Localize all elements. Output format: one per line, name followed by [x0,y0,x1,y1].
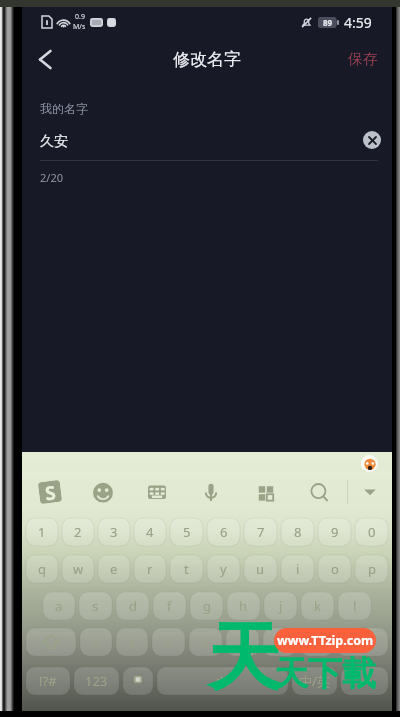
staticText: z [93,633,100,651]
button[interactable]: a [43,592,75,620]
staticText: o [331,560,339,578]
button[interactable]: l [338,592,371,620]
button[interactable]: Sogou [34,476,66,508]
button[interactable]: 2 [62,518,94,546]
staticText: y [220,560,227,578]
staticText: m [310,633,323,651]
staticText: b [239,633,247,651]
button[interactable]: d [116,592,149,620]
button[interactable]: Clear [363,131,381,149]
button[interactable]: 5 [170,518,203,546]
button[interactable]: Voice input [195,476,227,508]
staticText: 89 [323,17,333,28]
staticText: c [165,633,172,651]
staticText: 久安 [40,133,68,151]
button[interactable]: e [98,555,130,583]
staticText: 4 [146,523,154,541]
staticText: g [203,597,211,615]
button[interactable]: Keyboard [141,476,173,508]
staticText: j [279,597,283,615]
button[interactable]: 4 [134,518,166,546]
button[interactable]: o [318,555,351,583]
staticText: n [275,633,284,651]
button[interactable]: n [263,628,296,656]
staticText: t [184,560,189,578]
staticText: 3 [110,523,118,541]
button[interactable]: 7 [244,518,277,546]
button[interactable]: y [207,555,240,583]
staticText: 中/英 [299,672,330,690]
button[interactable]: Backspace [337,628,388,656]
button[interactable]: j [264,592,297,620]
button[interactable]: r [134,555,166,583]
button[interactable]: c [152,628,185,656]
button[interactable]: 9 [318,518,351,546]
button[interactable]: 3 [98,518,130,546]
staticText: S [44,480,57,503]
staticText: d [129,597,137,615]
staticText: w [73,560,84,578]
button[interactable]: Apps [250,476,282,508]
staticText: q [38,560,46,578]
staticText: 修改名字 [173,49,241,70]
button[interactable]: 保存 [334,38,392,81]
button[interactable]: Shift [26,628,76,656]
staticText: k [314,597,321,615]
button[interactable]: u [244,555,277,583]
button[interactable]: x [116,628,148,656]
button[interactable]: v [189,628,222,656]
button[interactable]: m [300,628,333,656]
staticText: !?# [39,672,57,690]
button[interactable]: p [355,555,388,583]
button[interactable]: w [62,555,94,583]
button[interactable]: z [80,628,112,656]
button[interactable]: t [170,555,203,583]
button[interactable]: b [226,628,259,656]
button[interactable]: Back [22,36,68,82]
staticText: h [239,597,248,615]
staticText: 8 [294,523,302,541]
button[interactable]: 8 [281,518,314,546]
staticText: 保存 [348,50,378,69]
button[interactable]: i [281,555,314,583]
button[interactable]: !?# [26,667,70,695]
staticText: u [256,560,265,578]
staticText: 4:59 [344,13,372,32]
button[interactable]: 1 [26,518,58,546]
staticText: r [147,560,153,578]
staticText: e [110,560,118,578]
button[interactable]: Space [157,667,288,695]
staticText: 9 [331,523,339,541]
staticText: 2 [74,523,82,541]
button[interactable]: 6 [207,518,240,546]
staticText: v [202,633,209,651]
button[interactable]: f [153,592,186,620]
staticText: www.TTzip.com [277,632,374,649]
button[interactable]: Collapse keyboard [354,476,386,508]
button[interactable]: Emoji [87,476,119,508]
staticText: s [92,597,99,615]
staticText: 天下載 [274,652,376,695]
staticText: 1 [38,523,46,541]
button[interactable]: k [301,592,334,620]
button[interactable]: h [227,592,260,620]
button[interactable]: 0 [355,518,388,546]
staticText: f [167,597,172,615]
staticText: 6 [220,523,228,541]
button[interactable]: Search [304,476,336,508]
staticText: 我的名字 [40,101,88,116]
button[interactable]: Emoji keyboard [123,667,153,695]
button[interactable]: 中/英 [292,667,337,695]
button[interactable]: s [79,592,112,620]
button[interactable]: Enter [341,667,388,695]
staticText: 0 [368,523,376,541]
button[interactable]: q [26,555,58,583]
button[interactable]: 123 [74,667,119,695]
staticText: x [129,633,136,651]
staticText: p [368,560,376,578]
staticText: i [296,560,300,578]
button[interactable]: Assistant [361,455,378,472]
staticText: M/s [73,22,86,32]
button[interactable]: g [190,592,223,620]
staticText: 5 [183,523,191,541]
